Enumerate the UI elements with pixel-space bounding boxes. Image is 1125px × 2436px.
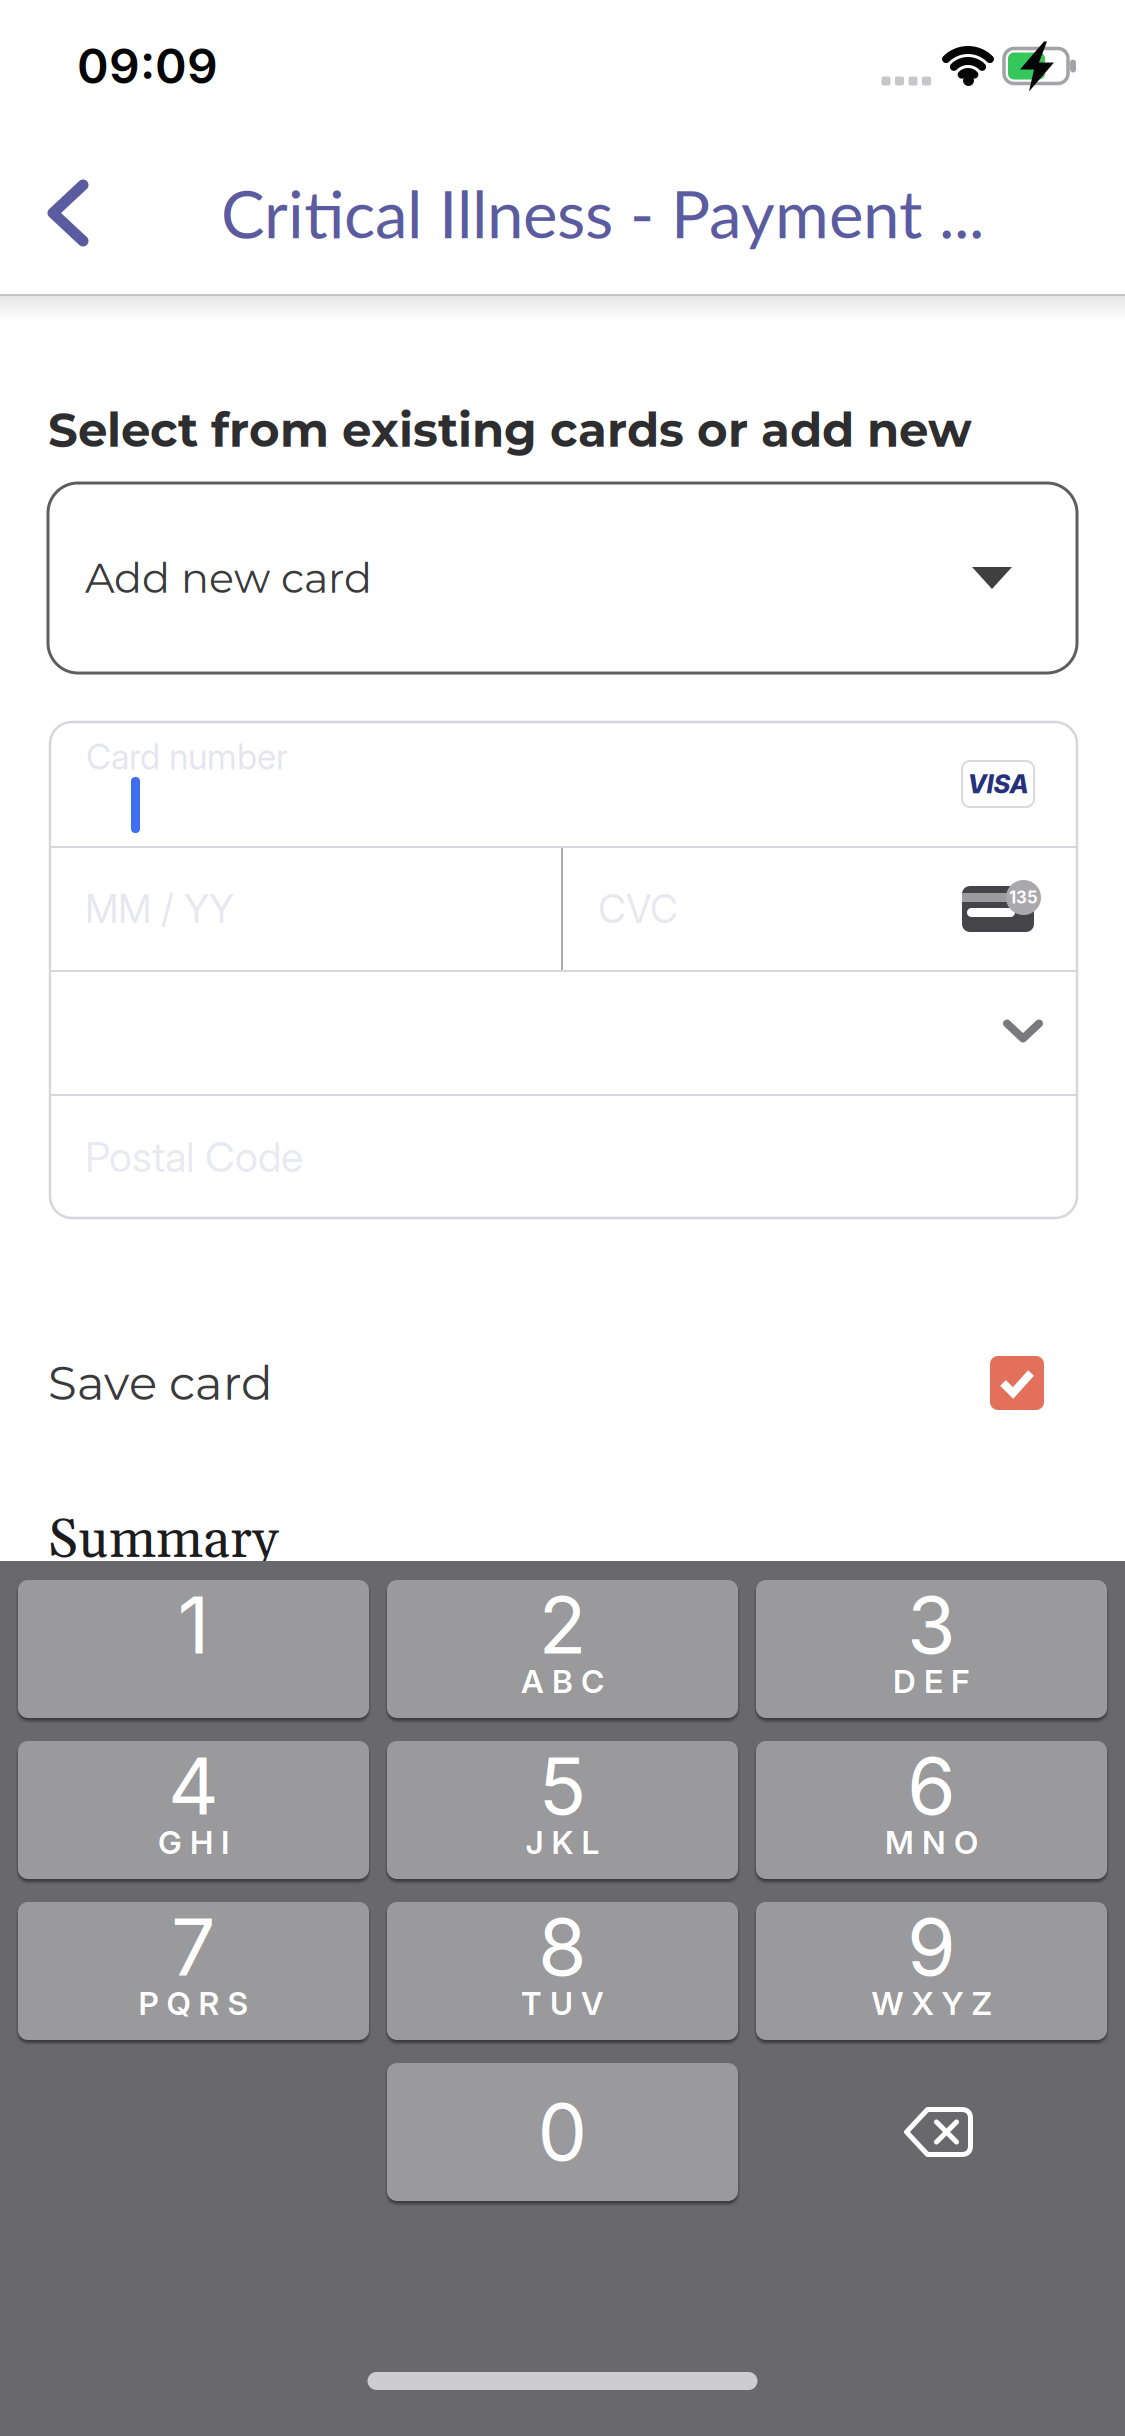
staticText: 09:09 [77,37,218,95]
button[interactable]: 6 [756,1741,1107,1879]
button[interactable]: Add new card [48,483,1077,673]
staticText: 4 [168,1738,219,1834]
staticText: Save card [48,1355,273,1411]
button[interactable]: 2 [387,1580,738,1718]
staticText: W X Y Z [871,1984,991,2023]
staticText: 8 [538,1899,587,1995]
button[interactable]: 0 [387,2063,738,2201]
staticText: 3 [907,1577,956,1673]
staticText: 7 [171,1899,216,1995]
button[interactable]: Delete [756,2063,1107,2201]
staticText: G H I [158,1823,229,1862]
staticText: 9 [907,1899,956,1995]
staticText: 0 [537,2084,587,2180]
button[interactable]: Save card [990,1356,1125,1410]
button[interactable]: 7 [18,1902,369,2040]
button[interactable]: 5 [387,1741,738,1879]
staticText: 135 [1009,887,1038,908]
staticText: M N O [885,1823,978,1862]
staticText: 1 [177,1577,209,1673]
staticText: Card number [86,736,288,778]
button[interactable]: 8 [387,1902,738,2040]
button[interactable]: Back [0,170,89,256]
staticText: Summary [48,1507,278,1575]
staticText: P Q R S [138,1984,248,2023]
staticText: VISA [967,769,1028,799]
button[interactable]: 3 [756,1580,1107,1718]
staticText: 2 [538,1577,586,1673]
button[interactable]: 4 [18,1741,369,1879]
staticText: Postal Code [85,1132,303,1182]
staticText: Critical Illness - Payment ... [221,174,984,252]
staticText: A B C [521,1662,604,1701]
staticText: J K L [525,1823,599,1862]
staticText: Select from existing cards or add new [48,402,972,458]
staticText: D E F [893,1662,970,1701]
staticText: 6 [907,1738,956,1834]
button[interactable]: 9 [756,1902,1107,2040]
button[interactable]: 1 [18,1580,369,1718]
staticText: CVC [598,886,678,932]
staticText: Add new card [85,553,372,603]
staticText: MM / YY [85,886,234,932]
staticText: T U V [521,1984,604,2023]
staticText: 5 [538,1738,586,1834]
